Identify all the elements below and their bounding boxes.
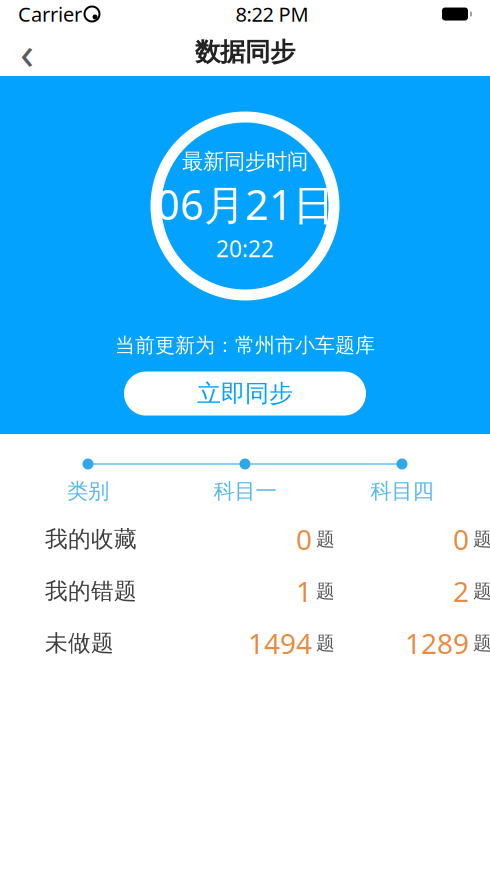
staticText: 1289 <box>405 625 469 662</box>
staticText: 数据同步 <box>195 36 295 67</box>
staticText: 1 <box>296 573 312 610</box>
staticText: 06月21日 <box>156 177 334 231</box>
staticText: 0 <box>296 521 312 558</box>
staticText: 我的错题 <box>45 577 137 605</box>
staticText: 当前更新为：常州市小车题库 <box>115 333 375 358</box>
staticText: 题 <box>316 580 335 603</box>
button[interactable]: 返回 <box>4 29 50 75</box>
staticText: 最新同步时间 <box>182 148 308 175</box>
staticText: ‹ <box>20 22 34 82</box>
staticText: 8:22 PM <box>235 1 308 27</box>
staticText: 科目一 <box>213 478 276 504</box>
staticText: 题 <box>473 632 490 655</box>
staticText: 2 <box>453 573 469 610</box>
staticText: 题 <box>473 580 490 603</box>
staticText: 立即同步 <box>197 379 293 408</box>
staticText: 20:22 <box>216 233 274 264</box>
staticText: Carrier <box>18 1 82 27</box>
staticText: 题 <box>316 632 335 655</box>
staticText: 类别 <box>67 478 109 504</box>
staticText: 0 <box>453 521 469 558</box>
staticText: 题 <box>473 528 490 551</box>
button[interactable]: 立即同步 <box>124 372 366 416</box>
staticText: 未做题 <box>45 629 114 657</box>
staticText: 我的收藏 <box>45 525 137 553</box>
staticText: 科目四 <box>370 478 433 504</box>
staticText: 1494 <box>248 625 312 662</box>
staticText: 题 <box>316 528 335 551</box>
